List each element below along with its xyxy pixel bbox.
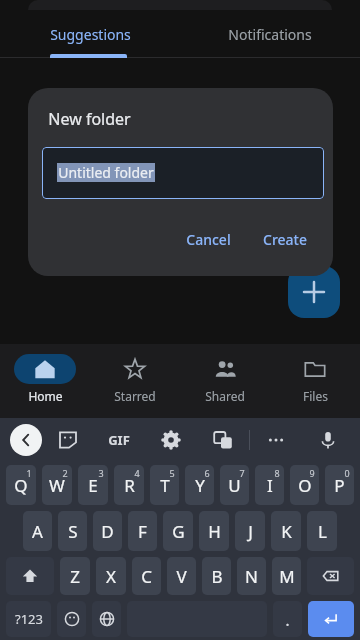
button[interactable]: Shift — [6, 557, 54, 595]
button[interactable]: Files — [270, 344, 360, 418]
button[interactable]: U — [220, 465, 249, 505]
button[interactable]: Cancel — [174, 222, 243, 257]
button[interactable]: Back — [10, 424, 42, 456]
button[interactable]: ?123 — [6, 601, 51, 637]
staticText: 7 — [239, 467, 245, 479]
staticText: G — [172, 520, 185, 543]
button[interactable]: V — [167, 557, 196, 595]
staticText: 1 — [26, 467, 32, 479]
staticText: 3 — [98, 467, 104, 479]
button[interactable]: More options — [250, 418, 302, 462]
staticText: Shared — [205, 388, 245, 404]
staticText: Untitled folder — [58, 163, 154, 182]
button[interactable]: O — [290, 465, 319, 505]
button[interactable]: Z — [60, 557, 90, 595]
button[interactable]: B — [202, 557, 231, 595]
staticText: . — [285, 608, 290, 631]
staticText: Z — [70, 565, 80, 588]
staticText: B — [211, 565, 223, 588]
staticText: Cancel — [186, 230, 231, 249]
staticText: Home — [28, 388, 63, 404]
staticText: Q — [14, 474, 28, 497]
button[interactable]: M — [272, 557, 301, 595]
button[interactable]: GIF — [93, 418, 145, 462]
staticText: 9 — [309, 467, 315, 479]
staticText: 2 — [62, 467, 68, 479]
button[interactable]: Emoji — [42, 418, 93, 462]
button[interactable]: I — [255, 465, 284, 505]
button[interactable]: Translate — [197, 418, 249, 462]
button[interactable]: Backspace — [307, 557, 354, 595]
staticText: 4 — [134, 467, 140, 479]
staticText: S — [68, 520, 78, 543]
staticText: C — [141, 565, 152, 588]
staticText: D — [101, 520, 114, 543]
button[interactable]: . — [273, 601, 302, 637]
staticText: 6 — [204, 467, 210, 479]
button[interactable]: X — [96, 557, 126, 595]
button[interactable]: A — [23, 511, 52, 551]
button[interactable]: E — [78, 465, 108, 505]
button[interactable]: K — [271, 511, 301, 551]
button[interactable]: J — [235, 511, 265, 551]
button[interactable]: D — [93, 511, 122, 551]
staticText: GIF — [108, 431, 130, 449]
button[interactable]: N — [237, 557, 266, 595]
staticText: New folder — [48, 108, 131, 130]
button[interactable]: Q — [6, 465, 36, 505]
staticText: N — [245, 565, 258, 588]
staticText: ?123 — [15, 610, 43, 628]
button[interactable]: Enter — [308, 601, 354, 637]
staticText: O — [298, 474, 312, 497]
button[interactable]: R — [114, 465, 144, 505]
staticText: R — [124, 474, 135, 497]
button[interactable]: Starred — [90, 344, 180, 418]
button[interactable]: Create new — [288, 266, 340, 318]
button[interactable]: Voice input — [302, 418, 354, 462]
button[interactable]: Notifications — [180, 10, 360, 58]
button[interactable]: Shared — [180, 344, 270, 418]
staticText: Suggestions — [50, 25, 131, 44]
staticText: I — [267, 474, 273, 497]
button[interactable]: Create — [251, 222, 319, 257]
button[interactable]: Language — [92, 601, 121, 637]
button[interactable]: P — [325, 465, 354, 505]
staticText: Y — [195, 474, 205, 497]
button[interactable]: Y — [185, 465, 214, 505]
staticText: V — [176, 565, 187, 588]
button[interactable]: L — [307, 511, 337, 551]
staticText: P — [334, 474, 345, 497]
staticText: X — [106, 565, 116, 588]
button[interactable]: W — [42, 465, 72, 505]
button[interactable]: H — [199, 511, 229, 551]
button[interactable]: Suggestions — [0, 10, 180, 58]
staticText: E — [88, 474, 98, 497]
button[interactable]: Emoji — [57, 601, 86, 637]
button[interactable]: C — [132, 557, 161, 595]
staticText: F — [138, 520, 147, 543]
staticText: 5 — [169, 467, 175, 479]
button[interactable]: T — [150, 465, 179, 505]
staticText: Files — [303, 388, 328, 404]
button[interactable]: Settings — [145, 418, 197, 462]
staticText: H — [208, 520, 221, 543]
staticText: Create — [263, 230, 307, 249]
staticText: J — [248, 520, 253, 543]
button[interactable]: Home — [0, 344, 90, 418]
button[interactable]: Untitled folder — [42, 147, 324, 199]
staticText: 0 — [344, 467, 350, 479]
staticText: K — [281, 520, 292, 543]
button[interactable]: F — [128, 511, 157, 551]
button[interactable]: S — [58, 511, 87, 551]
staticText: U — [228, 474, 241, 497]
staticText: T — [160, 474, 170, 497]
staticText: Starred — [114, 388, 156, 404]
staticText: Notifications — [228, 25, 312, 44]
staticText: 8 — [274, 467, 280, 479]
staticText: A — [32, 520, 43, 543]
staticText: M — [279, 565, 295, 588]
staticText: W — [49, 474, 65, 497]
button[interactable]: G — [163, 511, 193, 551]
staticText: L — [318, 520, 327, 543]
